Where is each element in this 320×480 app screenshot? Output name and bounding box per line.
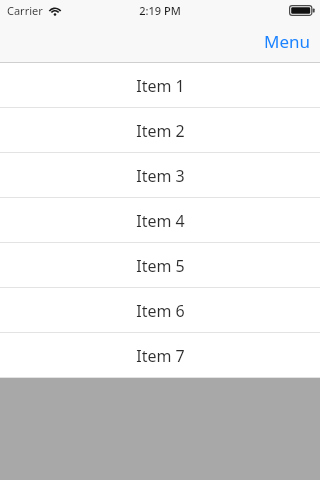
button[interactable]: Item 4: [0, 198, 320, 243]
staticText: Item 6: [136, 300, 185, 322]
button[interactable]: Item 3: [0, 153, 320, 198]
staticText: Menu: [264, 30, 311, 53]
staticText: Item 5: [136, 255, 185, 277]
button[interactable]: Item 5: [0, 243, 320, 288]
button[interactable]: Item 1: [0, 63, 320, 108]
button[interactable]: Item 7: [0, 333, 320, 378]
staticText: Item 3: [136, 165, 185, 187]
staticText: 2:19 PM: [139, 3, 181, 18]
button[interactable]: Item 2: [0, 108, 320, 153]
staticText: Item 1: [136, 75, 185, 97]
button[interactable]: Item 6: [0, 288, 320, 333]
staticText: Item 7: [136, 345, 185, 367]
staticText: Item 2: [136, 120, 185, 142]
other: Wi-Fi signal: [48, 5, 62, 16]
button[interactable]: Menu: [255, 23, 320, 60]
staticText: Item 4: [136, 210, 185, 232]
staticText: Carrier: [7, 3, 43, 18]
other: Battery full: [289, 5, 315, 16]
